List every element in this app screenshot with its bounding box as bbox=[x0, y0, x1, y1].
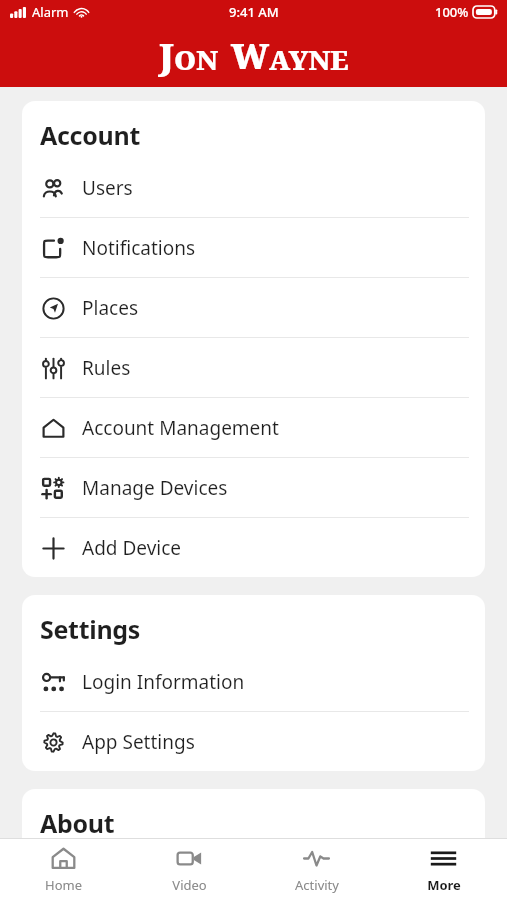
button[interactable]: Users bbox=[22, 158, 485, 217]
staticText: Activity bbox=[295, 876, 339, 894]
staticText: ON bbox=[174, 41, 218, 78]
other: More bbox=[430, 845, 457, 872]
button[interactable]: Home bbox=[0, 839, 126, 900]
staticText: W bbox=[231, 32, 269, 80]
staticText: About bbox=[40, 806, 115, 840]
button[interactable]: Version bbox=[22, 846, 485, 900]
other: Activity bbox=[303, 845, 330, 872]
button[interactable]: Notifications bbox=[22, 218, 485, 277]
button[interactable]: Account Management bbox=[22, 398, 485, 457]
staticText: Home bbox=[45, 876, 82, 894]
staticText: AYNE bbox=[269, 41, 349, 78]
staticText: More bbox=[427, 876, 461, 894]
staticText: Add Device bbox=[82, 535, 182, 561]
staticText: Settings bbox=[40, 612, 141, 646]
staticText: Manage Devices bbox=[82, 475, 228, 501]
staticText: Account Management bbox=[82, 415, 279, 441]
staticText: Account bbox=[40, 118, 140, 152]
button[interactable]: Activity bbox=[253, 839, 380, 900]
button[interactable]: Manage Devices bbox=[22, 458, 485, 517]
staticText: Alarm bbox=[32, 3, 69, 21]
staticText: Video bbox=[172, 876, 207, 894]
button[interactable]: Video bbox=[126, 839, 253, 900]
staticText: 9:41 AM bbox=[229, 3, 279, 21]
staticText: Login Information bbox=[82, 669, 245, 695]
button[interactable]: Login Information bbox=[22, 652, 485, 711]
other: Video bbox=[176, 845, 203, 872]
button[interactable]: Add Device bbox=[22, 518, 485, 577]
staticText: App Settings bbox=[82, 729, 195, 755]
staticText: 100% bbox=[435, 3, 469, 21]
staticText: Places bbox=[82, 295, 138, 321]
staticText: Notifications bbox=[82, 235, 196, 261]
button[interactable]: Rules bbox=[22, 338, 485, 397]
other: Home bbox=[50, 845, 77, 872]
button[interactable]: Places bbox=[22, 278, 485, 337]
button[interactable]: More bbox=[380, 839, 507, 900]
staticText: J bbox=[159, 32, 174, 80]
staticText: Rules bbox=[82, 355, 131, 381]
staticText: Users bbox=[82, 175, 133, 201]
button[interactable]: App Settings bbox=[22, 712, 485, 771]
